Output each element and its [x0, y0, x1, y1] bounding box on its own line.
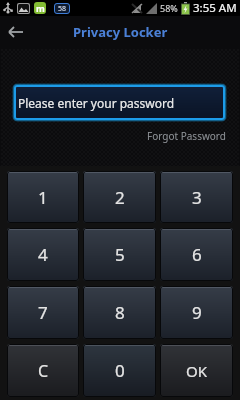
staticText: OK [186, 361, 208, 381]
staticText: Privacy Locker [73, 23, 168, 41]
button[interactable]: 1 [7, 171, 79, 223]
button[interactable]: 5 [83, 228, 156, 281]
button[interactable]: 6 [160, 228, 233, 281]
staticText: 6 [192, 243, 202, 266]
staticText: 9 [192, 301, 202, 324]
staticText: 58% [160, 2, 178, 14]
button[interactable]: Forgot Password [147, 129, 226, 143]
button[interactable]: 7 [7, 286, 79, 339]
staticText: 1 [38, 186, 48, 209]
button[interactable]: 0 [83, 344, 156, 397]
staticText: 0 [115, 359, 125, 382]
button[interactable]: Please enter your password [14, 85, 225, 120]
button[interactable]: 4 [7, 228, 79, 281]
staticText: 8 [115, 301, 125, 324]
button[interactable]: 8 [83, 286, 156, 339]
button[interactable]: 2 [83, 171, 156, 223]
button[interactable]: C [7, 344, 79, 397]
staticText: 5 [115, 243, 125, 266]
staticText: 58 [58, 4, 67, 14]
button[interactable]: OK [160, 344, 233, 397]
button[interactable] [0, 16, 32, 48]
staticText: 4 [38, 243, 48, 266]
staticText: 3 [192, 186, 202, 209]
staticText: Please enter your password [18, 95, 175, 111]
staticText: C [38, 360, 49, 382]
staticText: m [36, 2, 45, 14]
button[interactable]: 9 [160, 286, 233, 339]
staticText: 2 [115, 186, 125, 209]
button[interactable]: 3 [160, 171, 233, 223]
staticText: 3:55 AM [193, 0, 237, 16]
staticText: 7 [38, 301, 48, 324]
